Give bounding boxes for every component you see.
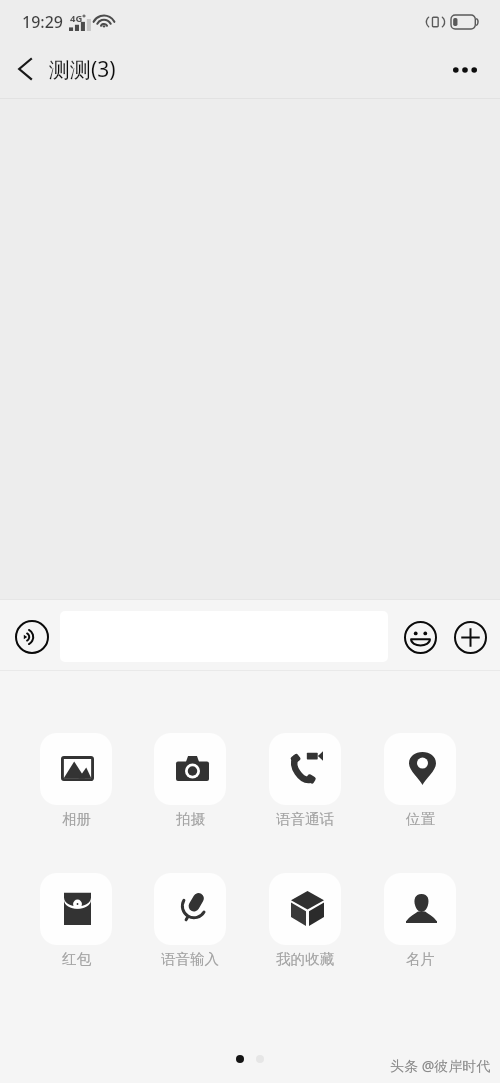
button[interactable]: 位置 — [384, 733, 456, 828]
staticText: 头条 @彼岸时代 — [390, 1056, 491, 1075]
button[interactable]: 语音输入 — [154, 873, 226, 968]
staticText: 拍摄 — [176, 810, 205, 828]
button[interactable]: 相册 — [40, 733, 112, 828]
button[interactable]: Emoji — [400, 617, 440, 657]
staticText: 名片 — [406, 950, 435, 968]
button[interactable]: Voice input — [13, 618, 51, 656]
staticText: 语音通话 — [276, 810, 334, 828]
staticText: 19:29 — [22, 11, 63, 33]
button[interactable]: 语音通话 — [269, 733, 341, 828]
button[interactable]: Back — [0, 42, 49, 96]
staticText: 位置 — [406, 810, 435, 828]
button[interactable]: 我的收藏 — [269, 873, 341, 968]
staticText: 测测(3) — [49, 55, 116, 84]
staticText: 相册 — [62, 810, 91, 828]
button[interactable]: 名片 — [384, 873, 456, 968]
button[interactable]: 拍摄 — [154, 733, 226, 828]
staticText: 4G — [70, 12, 83, 25]
staticText: 我的收藏 — [276, 950, 334, 968]
button[interactable]: More actions — [450, 617, 490, 657]
button[interactable]: 红包 — [40, 873, 112, 968]
staticText: 红包 — [62, 950, 91, 968]
staticText: 语音输入 — [161, 950, 219, 968]
button[interactable]: More options — [441, 48, 489, 96]
